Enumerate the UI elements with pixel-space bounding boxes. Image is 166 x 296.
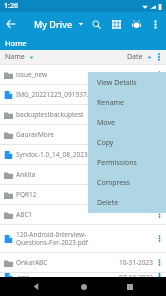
staticText: Rename	[97, 98, 125, 108]
button[interactable]: Item options	[153, 273, 166, 277]
staticText: .enc	[16, 273, 110, 277]
staticText: Delete	[97, 198, 119, 208]
staticText: 120-Android-Interview-Questions-For-2023…	[16, 230, 110, 247]
staticText: Compress	[97, 178, 130, 188]
button[interactable]: Search	[86, 14, 106, 34]
staticText: ABC1	[16, 210, 110, 219]
staticText: 10-31-2023	[119, 258, 153, 267]
button[interactable]: Name	[0, 52, 34, 62]
button[interactable]: ABC1	[0, 205, 166, 224]
staticText: Date	[127, 52, 143, 62]
button[interactable]: Recents	[120, 277, 139, 296]
staticText: OnkarABC	[16, 258, 110, 267]
button[interactable]: Rename	[88, 93, 166, 113]
staticText: 07-13-2023	[119, 273, 153, 277]
button[interactable]: Grid view	[106, 14, 126, 34]
button[interactable]: Apps	[126, 14, 146, 34]
staticText: Ankita	[16, 170, 110, 179]
button[interactable]: .enc	[0, 273, 166, 277]
button[interactable]: Item options	[153, 205, 166, 224]
button[interactable]: GauravMore	[0, 125, 166, 144]
staticText: backuptestbackuptest	[16, 110, 110, 119]
button[interactable]: Home	[74, 277, 93, 296]
button[interactable]: 120-Android-Interview-Questions-For-2023…	[0, 225, 166, 252]
staticText: Copy	[97, 138, 114, 148]
staticText: Name	[5, 52, 25, 62]
button[interactable]: backuptestbackuptest	[0, 105, 166, 124]
button[interactable]: Syndoc-1.0_14_08_2023.exe	[0, 145, 166, 164]
staticText: PQR12	[16, 190, 110, 199]
button[interactable]: View Details	[88, 72, 166, 93]
button[interactable]: Compress	[88, 173, 166, 193]
button[interactable]: Back	[27, 277, 46, 296]
button[interactable]: Delete	[88, 193, 166, 213]
button[interactable]: Ankita	[0, 165, 166, 184]
button[interactable]: issue_new	[0, 65, 166, 84]
staticText: Home	[5, 38, 27, 48]
staticText: 1:26	[4, 1, 18, 11]
button[interactable]: Item options	[153, 225, 166, 252]
staticText: issue_new	[16, 70, 110, 79]
button[interactable]: My Drive	[34, 18, 84, 30]
button[interactable]: Date	[127, 52, 152, 62]
staticText: 07-31-2023	[119, 70, 153, 79]
staticText: View Details	[97, 78, 137, 88]
button[interactable]: Back	[0, 13, 22, 35]
staticText: Syndoc-1.0_14_08_2023.exe	[16, 150, 110, 159]
button[interactable]: More options	[146, 15, 164, 33]
button[interactable]: Item options	[153, 65, 166, 84]
button[interactable]: Copy	[88, 133, 166, 153]
button[interactable]: OnkarABC	[0, 253, 166, 272]
button[interactable]: IMG_20221225_091937.jpg	[0, 85, 166, 104]
button[interactable]: Move	[88, 113, 166, 133]
staticText: My Drive	[34, 18, 73, 30]
button[interactable]: Home	[0, 36, 166, 50]
staticText: IMG_20221225_091937.jpg	[16, 90, 110, 99]
button[interactable]: Item options	[153, 253, 166, 272]
button[interactable]: Permissions	[88, 153, 166, 173]
staticText: Permissions	[97, 158, 137, 168]
staticText: Move	[97, 118, 115, 128]
staticText: GauravMore	[16, 130, 110, 139]
button[interactable]: Sort options	[152, 50, 166, 64]
button[interactable]: PQR12	[0, 185, 166, 204]
